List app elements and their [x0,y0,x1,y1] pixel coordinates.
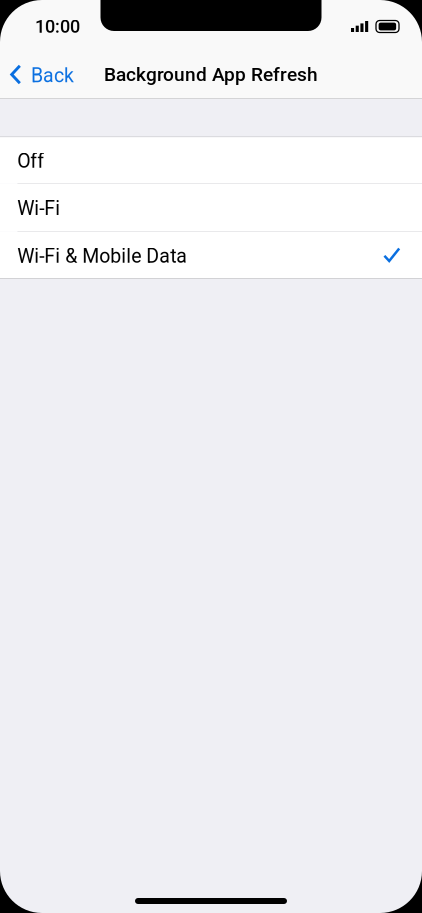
staticText: Wi-Fi & Mobile Data [17,245,187,267]
button[interactable]: Wi-Fi & Mobile Data [0,232,422,278]
staticText: Back [31,64,74,87]
staticText: Wi-Fi [17,197,60,220]
staticText: Background App Refresh [104,63,318,86]
staticText: Off [17,150,44,172]
button[interactable]: Off [0,137,422,184]
button[interactable]: Back [0,49,84,98]
staticText: 10:00 [35,16,80,37]
button[interactable]: Wi-Fi [0,184,422,232]
